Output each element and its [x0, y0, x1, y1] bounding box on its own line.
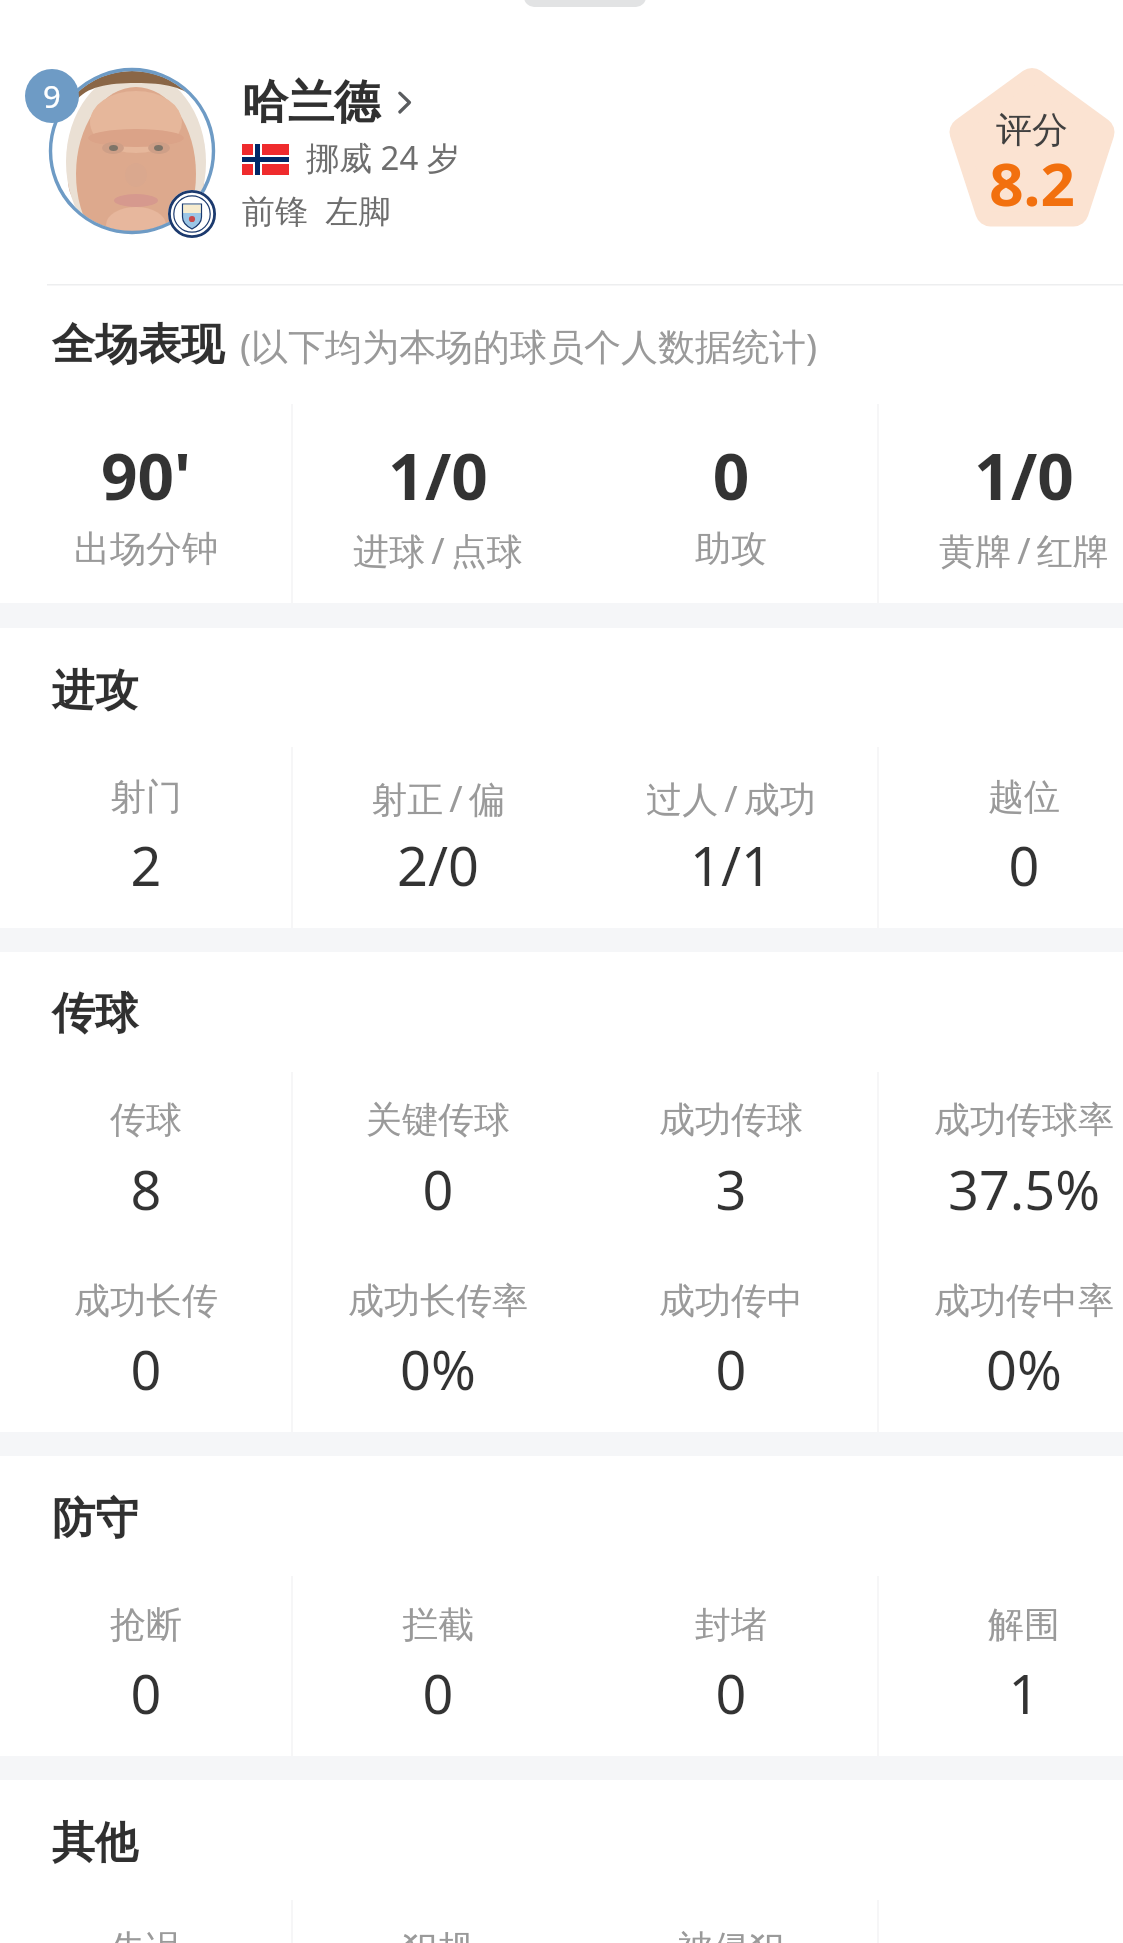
- staticText: 挪威 24 岁: [306, 135, 460, 180]
- staticText: 评分: [887, 107, 1123, 152]
- staticText: 0: [293, 1152, 583, 1226]
- button[interactable]: 过人 / 成功: [586, 747, 876, 928]
- staticText: 0: [879, 828, 1123, 902]
- staticText: 成功长传: [1, 1278, 291, 1323]
- staticText: 犯规: [293, 1926, 583, 1943]
- staticText: 成功传中率: [879, 1278, 1123, 1323]
- staticText: 3: [586, 1152, 876, 1226]
- button[interactable]: 拦截: [293, 1576, 583, 1756]
- button[interactable]: 成功传中率: [879, 1252, 1123, 1432]
- staticText: 成功长传率: [293, 1278, 583, 1323]
- staticText: 2: [1, 828, 291, 902]
- staticText: 0: [1, 1332, 291, 1406]
- button[interactable]: 成功传中: [586, 1252, 876, 1432]
- button[interactable]: 成功传球: [586, 1072, 876, 1252]
- button[interactable]: Shirt number 9: [25, 69, 79, 123]
- staticText: 1/0: [879, 432, 1123, 519]
- staticText: 传球: [1, 1097, 291, 1142]
- staticText: 8: [1, 1152, 291, 1226]
- button[interactable]: Player photo: [49, 69, 215, 235]
- staticText: 0: [586, 432, 876, 519]
- button[interactable]: 成功传球率: [879, 1072, 1123, 1252]
- staticText: 拦截: [293, 1602, 583, 1647]
- staticText: 传球: [52, 987, 138, 1041]
- staticText: 成功传球: [586, 1097, 876, 1142]
- staticText: 成功传中: [586, 1278, 876, 1323]
- staticText: 8.2: [887, 142, 1123, 224]
- staticText: 抢断: [1, 1602, 291, 1647]
- button[interactable]: 犯规: [293, 1900, 583, 1943]
- staticText: 0%: [293, 1332, 583, 1406]
- staticText: 0: [293, 1656, 583, 1730]
- staticText: 过人 / 成功: [586, 774, 876, 823]
- staticText: 进攻: [52, 664, 138, 718]
- button[interactable]: 成功长传率: [293, 1252, 583, 1432]
- staticText: 被侵犯: [586, 1926, 876, 1943]
- staticText: 进球 / 点球: [293, 526, 583, 575]
- button[interactable]: 解围: [879, 1576, 1123, 1756]
- button[interactable]: 失误: [1, 1900, 291, 1943]
- button[interactable]: 0: [586, 404, 876, 603]
- button[interactable]: 越位: [879, 747, 1123, 928]
- staticText: 前锋 左脚: [242, 188, 392, 233]
- staticText: 1/0: [293, 432, 583, 519]
- staticText: 0: [586, 1656, 876, 1730]
- staticText: 助攻: [586, 526, 876, 571]
- button[interactable]: 1/0: [293, 404, 583, 603]
- button[interactable]: 射正 / 偏: [293, 747, 583, 928]
- button[interactable]: 传球: [1, 1072, 291, 1252]
- staticText: 关键传球: [293, 1097, 583, 1142]
- button[interactable]: 射门: [1, 747, 291, 928]
- staticText: 哈兰德: [242, 74, 380, 132]
- staticText: 2/0: [293, 828, 583, 902]
- staticText: 37.5%: [879, 1152, 1123, 1226]
- staticText: 0: [1, 1656, 291, 1730]
- button[interactable]: 封堵: [586, 1576, 876, 1756]
- button[interactable]: 90': [1, 404, 291, 603]
- staticText: 0%: [879, 1332, 1123, 1406]
- staticText: 失误: [1, 1926, 291, 1943]
- button[interactable]: 被侵犯: [586, 1900, 876, 1943]
- button[interactable]: 成功长传: [1, 1252, 291, 1432]
- button[interactable]: 1/0: [879, 404, 1123, 603]
- staticText: 防守: [52, 1492, 138, 1546]
- staticText: 解围: [879, 1602, 1123, 1647]
- staticText: 射门: [1, 774, 291, 819]
- staticText: 出场分钟: [1, 526, 291, 571]
- staticText: 其他: [52, 1816, 138, 1870]
- button[interactable]: 抢断: [1, 1576, 291, 1756]
- staticText: 0: [586, 1332, 876, 1406]
- button[interactable]: 关键传球: [293, 1072, 583, 1252]
- other: Club badge: [168, 190, 216, 238]
- staticText: 全场表现: [52, 318, 224, 372]
- button[interactable]: Rating 8.2: [946, 68, 1118, 228]
- staticText: 1/1: [586, 828, 876, 902]
- staticText: 越位: [879, 774, 1123, 819]
- staticText: 1: [879, 1656, 1123, 1730]
- button[interactable]: 哈兰德: [242, 74, 413, 132]
- staticText: 射正 / 偏: [293, 774, 583, 823]
- staticText: (以下均为本场的球员个人数据统计): [240, 320, 818, 371]
- staticText: 成功传球率: [879, 1097, 1123, 1142]
- staticText: 黄牌 / 红牌: [879, 526, 1123, 575]
- staticText: 封堵: [586, 1602, 876, 1647]
- staticText: 90': [1, 432, 291, 519]
- staticText: 9: [43, 75, 61, 117]
